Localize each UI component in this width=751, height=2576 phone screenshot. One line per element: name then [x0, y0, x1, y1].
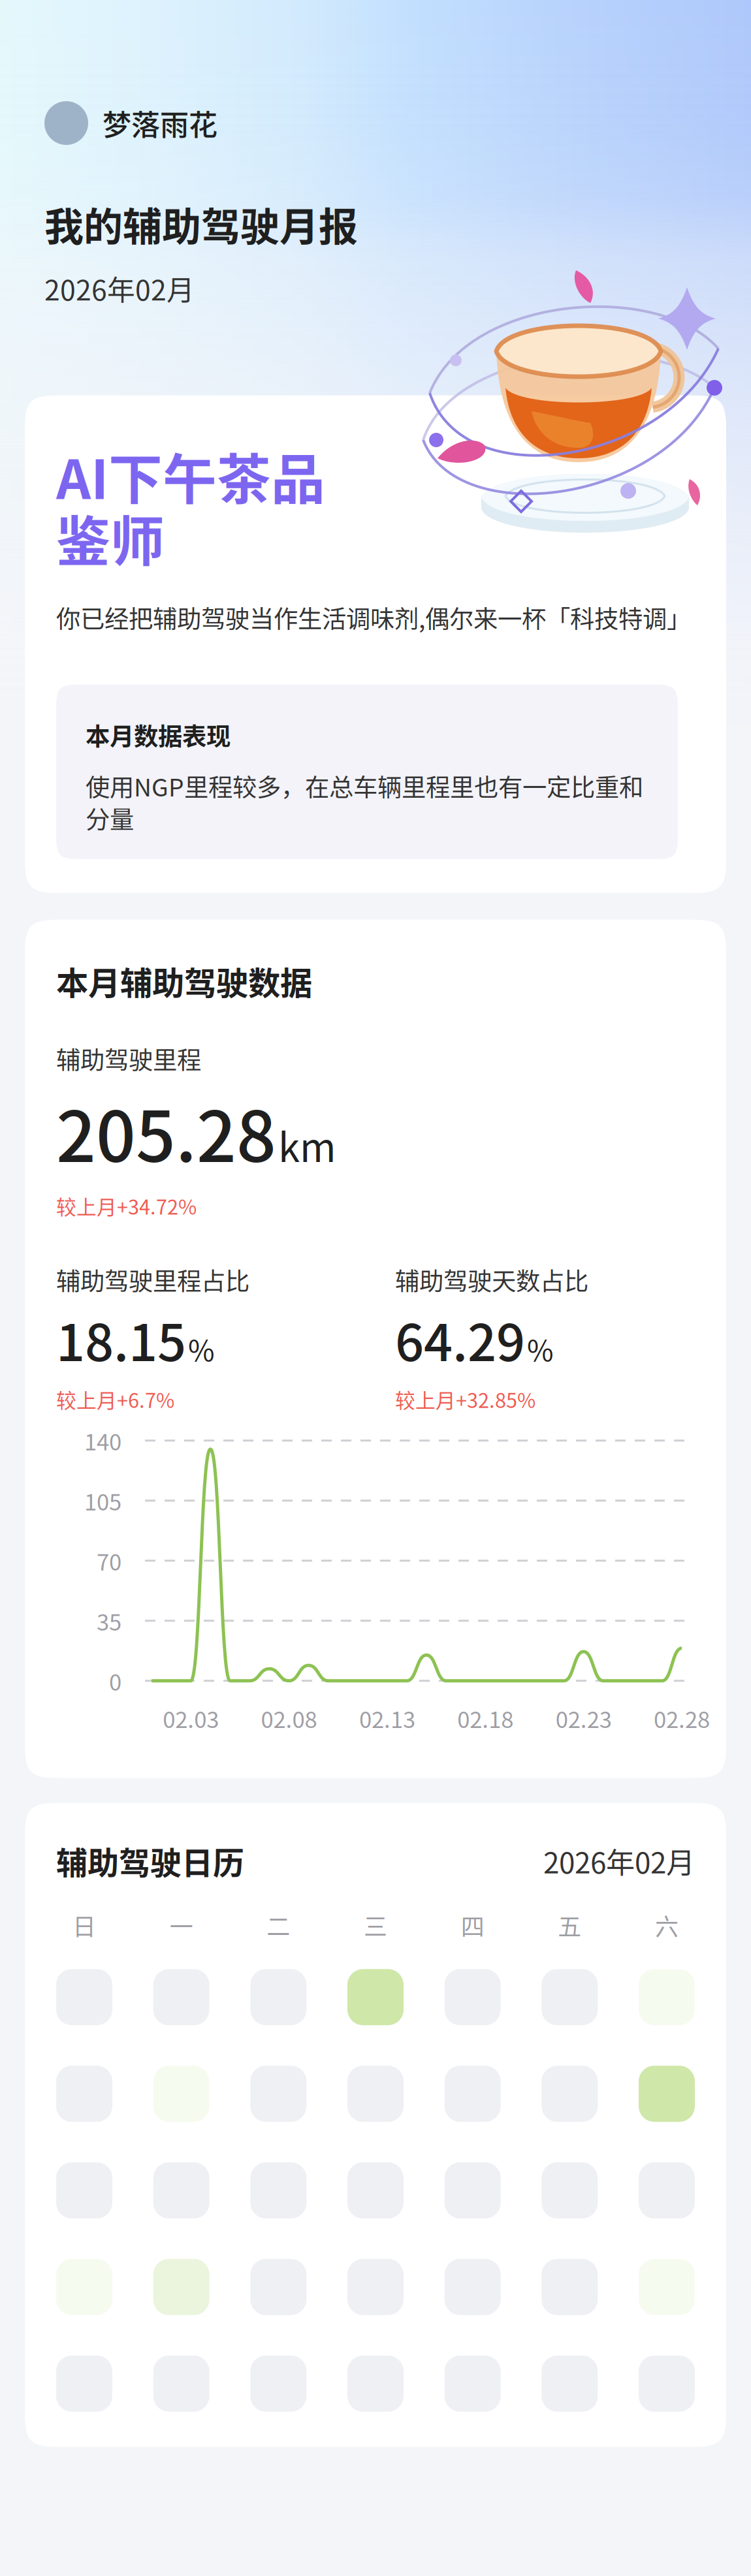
- staticText: 日: [72, 1908, 96, 1942]
- staticText: 辅助驾驶里程: [56, 1041, 201, 1076]
- staticText: 02.18: [457, 1702, 513, 1734]
- staticText: 四: [461, 1908, 484, 1942]
- staticText: 辅助驾驶日历: [56, 1838, 244, 1883]
- staticText: 0: [109, 1664, 121, 1697]
- staticText: %: [527, 1328, 554, 1369]
- staticText: 较上月+32.85%: [395, 1385, 535, 1414]
- staticText: 18.15: [56, 1303, 186, 1376]
- staticText: 六: [655, 1908, 679, 1942]
- staticText: 205.28: [56, 1081, 276, 1182]
- staticText: 使用NGP里程较多，在总车辆里程里也有一定比重和分量: [86, 768, 643, 836]
- staticText: 辅助驾驶天数占比: [395, 1262, 588, 1297]
- staticText: 五: [558, 1908, 581, 1942]
- staticText: 2026年02月: [543, 1840, 695, 1882]
- staticText: 64.29: [395, 1303, 525, 1376]
- staticText: 三: [364, 1908, 387, 1942]
- button[interactable]: 梦落雨花: [0, 101, 217, 145]
- staticText: 鉴师: [56, 499, 165, 577]
- staticText: 2026年02月: [44, 268, 195, 309]
- staticText: 较上月+6.7%: [56, 1385, 174, 1414]
- staticText: 02.13: [359, 1702, 415, 1734]
- staticText: 02.23: [555, 1702, 612, 1734]
- staticText: 02.28: [654, 1702, 710, 1734]
- staticText: 140: [84, 1424, 121, 1457]
- staticText: 105: [84, 1484, 121, 1517]
- staticText: 本月辅助驾驶数据: [56, 958, 312, 1004]
- staticText: 梦落雨花: [103, 102, 217, 144]
- staticText: 02.08: [261, 1702, 317, 1734]
- staticText: 本月数据表现: [86, 717, 231, 753]
- staticText: 二: [267, 1908, 290, 1942]
- staticText: 35: [97, 1604, 121, 1637]
- staticText: %: [188, 1328, 215, 1369]
- staticText: 较上月+34.72%: [56, 1191, 197, 1220]
- staticText: km: [278, 1117, 336, 1173]
- staticText: 辅助驾驶里程占比: [56, 1262, 249, 1297]
- staticText: AI下午茶品: [56, 437, 325, 515]
- staticText: 02.03: [163, 1702, 219, 1734]
- staticText: 我的辅助驾驶月报: [44, 196, 358, 253]
- staticText: 70: [97, 1544, 121, 1577]
- staticText: 你已经把辅助驾驶当作生活调味剂,偶尔来一杯「科技特调」: [56, 600, 691, 635]
- staticText: 一: [170, 1908, 193, 1942]
